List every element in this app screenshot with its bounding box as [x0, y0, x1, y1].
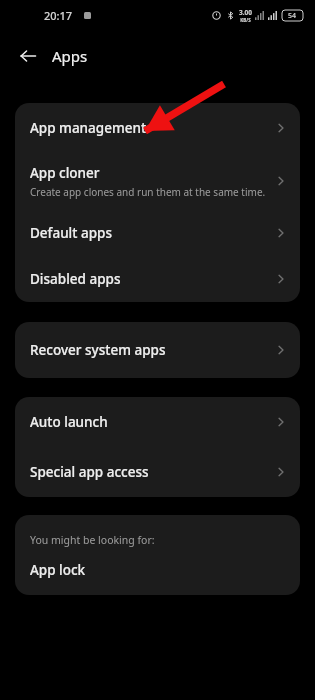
staticText: Apps: [52, 46, 88, 66]
button[interactable]: Recover system apps: [15, 322, 300, 378]
staticText: 54: [288, 11, 297, 21]
button[interactable]: Auto launch: [15, 397, 300, 447]
staticText: 3.00: [239, 8, 252, 17]
staticText: Create app clones and run them at the sa…: [30, 185, 266, 199]
button[interactable]: Default apps: [15, 210, 300, 256]
staticText: App management: [30, 119, 147, 137]
staticText: KB/S: [240, 17, 251, 23]
button[interactable]: App cloner: [15, 152, 300, 210]
staticText: Auto launch: [30, 413, 108, 431]
button[interactable]: App lock: [15, 561, 300, 579]
staticText: 20:17: [44, 8, 73, 23]
button[interactable]: App management: [15, 103, 300, 152]
staticText: Recover system apps: [30, 341, 166, 359]
staticText: Special app access: [30, 463, 149, 481]
staticText: App lock: [30, 561, 86, 579]
button[interactable]: Disabled apps: [15, 256, 300, 302]
staticText: Default apps: [30, 224, 112, 242]
button[interactable]: Special app access: [15, 447, 300, 497]
staticText: App cloner: [30, 164, 100, 182]
staticText: You might be looking for:: [30, 533, 155, 547]
button[interactable]: Back: [12, 40, 44, 72]
staticText: Disabled apps: [30, 270, 121, 288]
